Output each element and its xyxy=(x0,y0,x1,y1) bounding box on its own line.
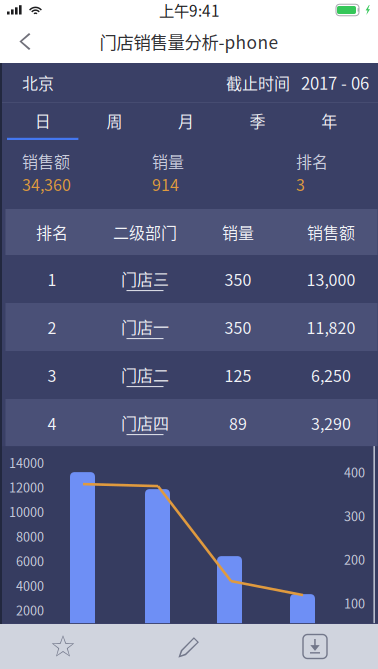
staticText: 125 xyxy=(224,363,251,387)
button[interactable]: 门店二 xyxy=(98,363,191,387)
staticText: 3,290 xyxy=(311,411,351,435)
staticText: 34,360 xyxy=(22,172,71,196)
staticText: 1 xyxy=(47,267,56,291)
staticText: 3 xyxy=(47,363,56,387)
button[interactable]: 门店四 xyxy=(98,411,191,435)
button[interactable]: 北京 xyxy=(0,63,140,102)
staticText: 季 xyxy=(250,109,266,132)
button[interactable]: 门店一 xyxy=(98,315,191,339)
staticText: 12000 xyxy=(9,478,44,496)
staticText: 400 xyxy=(344,463,365,481)
button[interactable]: Download xyxy=(252,624,378,669)
staticText: 北京 xyxy=(22,71,54,94)
staticText: 销售额 xyxy=(22,149,70,172)
button[interactable]: 季 xyxy=(222,103,293,140)
staticText: 200 xyxy=(344,550,365,568)
staticText: 300 xyxy=(344,506,365,525)
staticText: 门店四 xyxy=(121,411,169,434)
staticText: 2000 xyxy=(16,601,44,619)
staticText: 100 xyxy=(344,594,365,612)
staticText: 89 xyxy=(229,411,247,435)
staticText: 销量 xyxy=(222,220,254,244)
staticText: 350 xyxy=(224,267,251,291)
staticText: 月 xyxy=(178,109,194,132)
staticText: 14000 xyxy=(9,453,44,471)
button[interactable]: 年 xyxy=(293,103,365,140)
button[interactable]: 门店三 xyxy=(98,267,191,291)
button[interactable]: Edit xyxy=(126,624,252,669)
staticText: 截止时间 xyxy=(226,71,290,94)
staticText: 排名 xyxy=(296,149,328,172)
staticText: 周 xyxy=(106,109,122,132)
staticText: 2017 - 06 xyxy=(301,70,369,94)
staticText: 上午9:41 xyxy=(159,0,220,21)
staticText: 门店三 xyxy=(121,267,169,290)
staticText: 8000 xyxy=(16,527,44,545)
button[interactable]: Back xyxy=(0,20,45,63)
staticText: 2 xyxy=(47,315,56,339)
staticText: 排名 xyxy=(36,220,68,244)
staticText: 二级部门 xyxy=(113,220,177,244)
staticText: 门店一 xyxy=(121,315,169,338)
staticText: 3 xyxy=(296,172,305,196)
staticText: 350 xyxy=(224,315,251,339)
staticText: 4 xyxy=(47,411,56,435)
button[interactable]: 截止时间 xyxy=(226,63,378,102)
staticText: 914 xyxy=(152,172,179,196)
staticText: 6000 xyxy=(16,552,44,570)
staticText: 13,000 xyxy=(306,267,355,291)
staticText: 日 xyxy=(35,109,51,132)
staticText: 6,250 xyxy=(311,363,351,387)
staticText: 10000 xyxy=(9,502,44,521)
staticText: 年 xyxy=(321,109,337,132)
staticText: 销售额 xyxy=(307,220,355,244)
button[interactable]: 周 xyxy=(79,103,150,140)
staticText: 门店二 xyxy=(121,363,169,386)
button[interactable]: 月 xyxy=(150,103,222,140)
staticText: 销量 xyxy=(152,149,184,172)
staticText: 11,820 xyxy=(306,315,355,339)
staticText: 4000 xyxy=(16,576,44,594)
button[interactable]: 日 xyxy=(7,103,79,140)
staticText: 门店销售量分析-phone xyxy=(99,29,278,54)
button[interactable]: Favorite xyxy=(0,624,126,669)
